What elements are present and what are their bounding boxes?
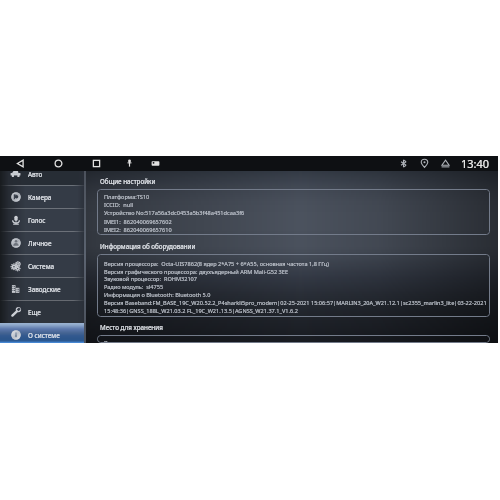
staticText: IMEI1: 862040069657602: [104, 218, 172, 226]
staticText: Версия Baseband:FM_BASE_19C_W20.52.2_P4s…: [104, 299, 487, 307]
staticText: Общие настройки: [100, 177, 156, 186]
staticText: 13:40: [461, 156, 490, 171]
staticText: Авто: [28, 171, 43, 179]
staticText: Голос: [28, 216, 46, 225]
button[interactable]: Заводские: [0, 277, 86, 300]
button[interactable]: Home: [52, 157, 65, 170]
button[interactable]: Bluetooth: [397, 157, 410, 170]
staticText: Внутренняя память: [104, 339, 158, 343]
staticText: IMEI2: 862040069657610: [104, 226, 172, 234]
button[interactable]: Платформа:TS10: [97, 189, 490, 235]
staticText: Устройство No:517a56a3dc0453a5b3f48a451d…: [104, 209, 245, 217]
button[interactable]: Версия процессора: Octa-UIS7862(8 ядер 2…: [97, 254, 490, 317]
staticText: Информация об оборудовании: [100, 242, 196, 251]
staticText: Система: [28, 262, 55, 271]
button[interactable]: Голос: [0, 208, 86, 231]
staticText: Еще: [28, 308, 41, 317]
staticText: Информация о Bluetooth: Bluetooth 5.0: [104, 291, 211, 299]
staticText: Личное: [28, 239, 52, 248]
staticText: Звуковой процессор: ROHM32107: [104, 275, 197, 283]
staticText: 15:48:36|GNSS_188L_W21.03.2 FL_19C_W21.1…: [104, 307, 298, 315]
staticText: Камера: [28, 193, 52, 202]
button[interactable]: Back: [14, 157, 27, 170]
staticText: О системе: [28, 331, 60, 340]
staticText: Радио модуль: sl4755: [104, 283, 164, 291]
button[interactable]: О системе: [0, 323, 86, 343]
button[interactable]: Система: [0, 254, 86, 277]
button[interactable]: Личное: [0, 231, 86, 254]
button[interactable]: Location: [418, 157, 431, 170]
staticText: Версия графического процессора: двухъяде…: [104, 268, 289, 276]
staticText: Платформа:TS10: [104, 193, 150, 201]
button[interactable]: Screenshot: [149, 157, 162, 170]
button[interactable]: Eject: [439, 157, 452, 170]
staticText: Заводские: [28, 285, 61, 294]
button[interactable]: Внутренняя память: [97, 335, 490, 343]
staticText: Версия процессора: Octa-UIS7862(8 ядер 2…: [104, 260, 329, 268]
button[interactable]: Камера: [0, 185, 86, 208]
staticText: Место для хранения: [100, 323, 163, 332]
button[interactable]: Pin: [123, 157, 136, 170]
button[interactable]: Еще: [0, 300, 86, 323]
button[interactable]: Recents: [90, 157, 103, 170]
button[interactable]: Авто: [0, 171, 86, 185]
staticText: ICCID: null: [104, 201, 134, 209]
